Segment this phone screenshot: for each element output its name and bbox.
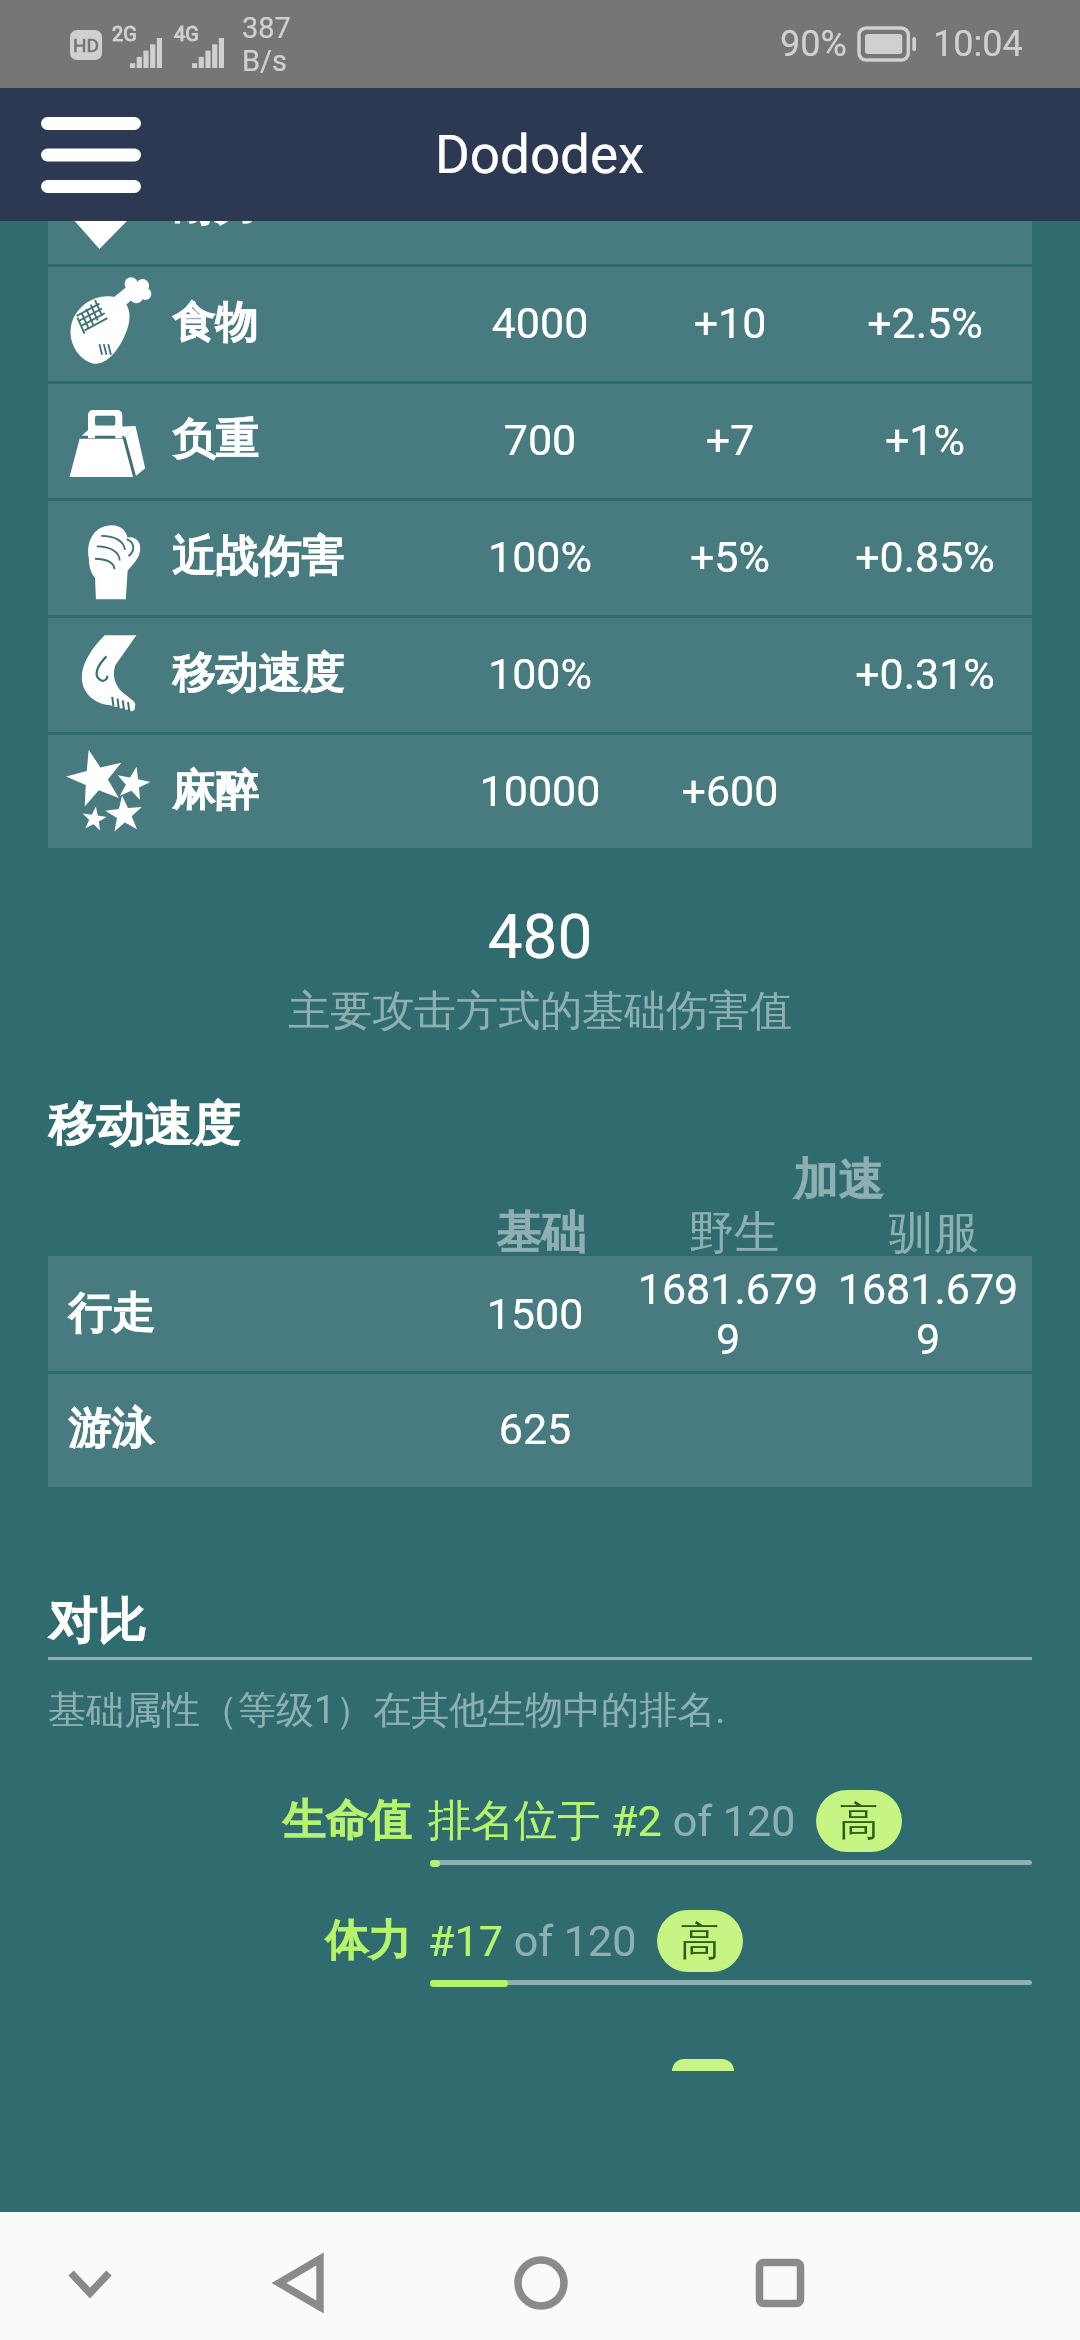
staticText: 10:04 — [933, 23, 1023, 65]
staticText: 移动速度 — [48, 1095, 240, 1155]
staticText: 加速 — [638, 1152, 1038, 1209]
staticText: +10 — [642, 298, 818, 348]
staticText: 440 — [438, 181, 642, 231]
staticText: 10000 — [438, 766, 642, 816]
staticText: +10% — [818, 181, 1032, 231]
staticText: #2 — [611, 1796, 662, 1846]
staticText: 2G — [112, 22, 137, 45]
staticText: 100% — [438, 532, 642, 582]
staticText: +1% — [818, 415, 1032, 465]
staticText: #17 — [428, 1916, 503, 1966]
staticText: 基础 — [444, 1205, 638, 1262]
button[interactable]: Home — [481, 2223, 601, 2340]
button[interactable]: Back — [240, 2223, 360, 2340]
button[interactable]: 麻醉 — [48, 732, 1032, 849]
staticText: 100% — [438, 649, 642, 699]
staticText: 行走 — [68, 1287, 154, 1341]
staticText: 对比 — [48, 1591, 146, 1653]
staticText: +7 — [642, 415, 818, 465]
staticText: 1681.679 9 — [632, 1264, 824, 1364]
staticText: 耐力 — [172, 179, 258, 233]
button[interactable]: 移动速度 — [48, 615, 1032, 732]
button[interactable]: 体力 — [0, 1910, 1080, 1972]
staticText: 4G — [174, 22, 199, 45]
staticText: 游泳 — [68, 1402, 154, 1456]
button[interactable]: 负重 — [48, 381, 1032, 498]
staticText: 480 — [0, 900, 1080, 973]
staticText: 90% — [780, 23, 847, 65]
staticText: of 120 — [503, 1916, 637, 1966]
button[interactable]: Open navigation menu — [39, 117, 143, 193]
staticText: 麻醉 — [172, 764, 258, 818]
staticText: 排名位于 — [428, 1794, 611, 1848]
staticText: of 120 — [662, 1796, 796, 1846]
button[interactable]: 耐力 — [48, 147, 1032, 264]
button[interactable]: 生命值 — [0, 1790, 1080, 1852]
button[interactable]: 游泳 — [48, 1371, 1032, 1486]
staticText: 移动速度 — [172, 647, 344, 701]
staticText: 近战伤害 — [172, 530, 344, 584]
button[interactable]: Hide keyboard — [30, 2223, 150, 2340]
staticText: 主要攻击方式的基础伤害值 — [0, 985, 1080, 1038]
staticText: 负重 — [172, 413, 258, 467]
staticText: 700 — [438, 415, 642, 465]
staticText: 基础属性（等级1）在其他生物中的排名. — [48, 1686, 726, 1734]
staticText: +2.5% — [818, 298, 1032, 348]
staticText: +600 — [642, 766, 818, 816]
staticText: 1681.679 9 — [824, 1264, 1032, 1364]
staticText: 生命值 — [0, 1794, 411, 1848]
button[interactable]: Recent apps — [720, 2223, 840, 2340]
staticText: +5% — [642, 532, 818, 582]
staticText: 高 — [839, 1796, 879, 1846]
staticText: 1500 — [438, 1289, 632, 1339]
staticText: 高 — [680, 1916, 720, 1966]
button[interactable]: 行走 — [48, 1256, 1032, 1371]
staticText: HD — [73, 34, 100, 56]
staticText: +0.85% — [818, 532, 1032, 582]
staticText: +0.31% — [818, 649, 1032, 699]
staticText: +44 — [642, 181, 818, 231]
staticText: 625 — [438, 1404, 632, 1454]
staticText: 387 B/s — [242, 11, 291, 78]
staticText: Dododex — [435, 124, 645, 186]
button[interactable]: 食物 — [48, 264, 1032, 381]
button[interactable]: 近战伤害 — [48, 498, 1032, 615]
staticText: 驯服 — [830, 1205, 1038, 1262]
staticText: 4000 — [438, 298, 642, 348]
staticText: 食物 — [172, 296, 258, 350]
staticText: 体力 — [0, 1914, 411, 1968]
staticText: 野生 — [638, 1205, 830, 1262]
